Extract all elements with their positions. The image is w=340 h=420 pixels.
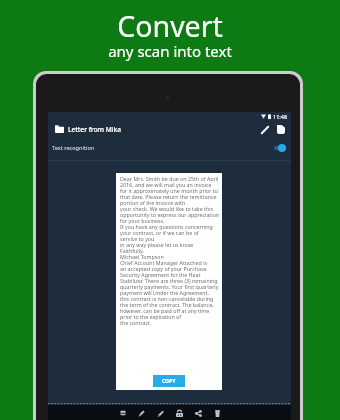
staticText: Convert — [117, 7, 223, 46]
staticText: Dear Mrs. Smith be due on 25th of April … — [120, 176, 220, 326]
button[interactable]: Draw — [132, 405, 151, 420]
button[interactable]: Delete — [208, 405, 227, 420]
staticText: Letter from Mika — [68, 125, 121, 134]
button[interactable]: Share — [189, 405, 208, 420]
staticText: Text recognition — [52, 144, 95, 152]
button[interactable]: Open folder — [53, 123, 65, 135]
staticText: any scan into text — [108, 41, 232, 61]
button[interactable]: Highlight — [151, 405, 170, 420]
button[interactable]: Crop — [113, 405, 132, 420]
staticText: 11:48 — [273, 113, 288, 120]
button[interactable]: COPY — [153, 375, 185, 387]
button[interactable]: Lock — [170, 405, 189, 420]
button[interactable]: Document — [274, 123, 287, 136]
button[interactable]: Edit — [258, 123, 271, 136]
button[interactable]: Text recognition — [48, 138, 291, 160]
staticText: COPY — [162, 378, 176, 385]
